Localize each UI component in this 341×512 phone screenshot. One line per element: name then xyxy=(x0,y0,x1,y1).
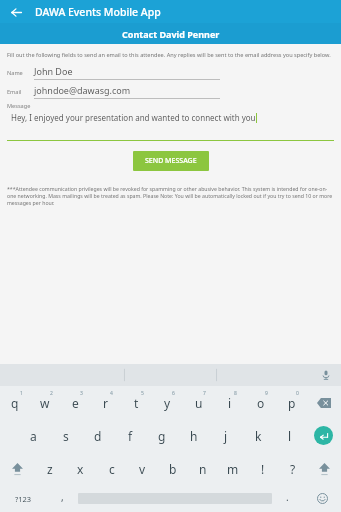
staticText: 3 xyxy=(80,390,83,397)
staticText: i xyxy=(228,395,232,411)
staticText: Contact David Penner xyxy=(122,28,220,40)
button[interactable]: Back xyxy=(6,2,26,22)
button[interactable]: i xyxy=(214,386,245,419)
button[interactable]: l xyxy=(274,419,306,452)
staticText: johndoe@dawasg.com xyxy=(34,84,131,96)
staticText: y xyxy=(164,395,171,411)
staticText: 7 xyxy=(203,390,206,397)
button[interactable]: ?123 xyxy=(0,485,47,512)
staticText: q xyxy=(11,395,19,411)
staticText: ?123 xyxy=(15,494,32,504)
button[interactable]: t xyxy=(121,386,152,419)
button[interactable]: r xyxy=(90,386,121,419)
staticText: 1 xyxy=(20,390,23,397)
button[interactable]: x xyxy=(65,452,96,485)
staticText: v xyxy=(139,461,146,477)
button[interactable]: w xyxy=(30,386,60,419)
staticText: 5 xyxy=(141,390,144,397)
staticText: o xyxy=(257,395,265,411)
staticText: a xyxy=(30,428,37,444)
staticText: c xyxy=(109,461,115,477)
button[interactable]: j xyxy=(210,419,242,452)
staticText: John Doe xyxy=(34,65,73,77)
staticText: Hey, I enjoyed your presentation and wan… xyxy=(11,112,256,123)
button[interactable]: Shift xyxy=(0,452,34,485)
button[interactable]: ? xyxy=(278,452,308,485)
staticText: , xyxy=(61,490,64,504)
button[interactable]: b xyxy=(158,452,188,485)
staticText: h xyxy=(190,428,198,444)
staticText: f xyxy=(128,428,133,444)
button[interactable]: Backspace xyxy=(307,386,341,419)
staticText: g xyxy=(158,428,166,444)
staticText: t xyxy=(134,395,139,411)
button[interactable]: a xyxy=(17,419,50,452)
staticText: w xyxy=(40,395,50,411)
staticText: ***Attendee communication privileges wil… xyxy=(7,185,334,206)
staticText: b xyxy=(169,461,177,477)
staticText: 2 xyxy=(50,390,53,397)
button[interactable]: g xyxy=(146,419,178,452)
staticText: r xyxy=(103,395,108,411)
button[interactable]: f xyxy=(114,419,146,452)
button[interactable]: z xyxy=(34,452,65,485)
staticText: 0 xyxy=(296,390,299,397)
button[interactable]: Shift xyxy=(308,452,341,485)
staticText: ! xyxy=(261,461,265,477)
staticText: 9 xyxy=(265,390,268,397)
staticText: 6 xyxy=(172,390,175,397)
staticText: . xyxy=(286,490,289,504)
staticText: e xyxy=(72,395,79,411)
staticText: Fill out the following fields to send an… xyxy=(7,51,331,59)
button[interactable]: ! xyxy=(248,452,278,485)
button[interactable]: o xyxy=(245,386,276,419)
button[interactable]: q xyxy=(0,386,30,419)
staticText: 4 xyxy=(110,390,113,397)
button[interactable]: n xyxy=(188,452,218,485)
button[interactable]: c xyxy=(96,452,127,485)
staticText: x xyxy=(77,461,84,477)
button[interactable]: k xyxy=(242,419,274,452)
button[interactable]: Emoji xyxy=(303,485,341,512)
button[interactable]: h xyxy=(178,419,210,452)
staticText: p xyxy=(288,395,296,411)
button[interactable]: m xyxy=(218,452,248,485)
staticText: 8 xyxy=(234,390,237,397)
button[interactable]: p xyxy=(276,386,307,419)
button[interactable]: v xyxy=(127,452,158,485)
button[interactable]: s xyxy=(50,419,82,452)
staticText: ? xyxy=(290,461,296,477)
staticText: n xyxy=(199,461,207,477)
button[interactable]: u xyxy=(183,386,214,419)
staticText: l xyxy=(288,428,292,444)
staticText: d xyxy=(94,428,102,444)
staticText: DAWA Events Mobile App xyxy=(35,5,161,19)
staticText: Email xyxy=(7,88,22,96)
staticText: Message xyxy=(7,102,31,110)
button[interactable]: y xyxy=(152,386,183,419)
button[interactable]: Enter xyxy=(306,419,341,452)
staticText: u xyxy=(195,395,203,411)
button[interactable]: . xyxy=(272,485,303,512)
button[interactable]: Space xyxy=(78,485,272,512)
button[interactable]: , xyxy=(47,485,78,512)
staticText: Name xyxy=(7,69,23,77)
staticText: k xyxy=(255,428,262,444)
staticText: SEND MESSAGE xyxy=(145,156,197,166)
staticText: s xyxy=(63,428,69,444)
staticText: j xyxy=(224,428,228,444)
staticText: z xyxy=(47,461,53,477)
button[interactable]: Voice input xyxy=(319,368,333,382)
button[interactable]: SEND MESSAGE xyxy=(133,151,209,171)
button[interactable]: d xyxy=(82,419,114,452)
button[interactable]: e xyxy=(60,386,90,419)
staticText: m xyxy=(227,461,239,477)
